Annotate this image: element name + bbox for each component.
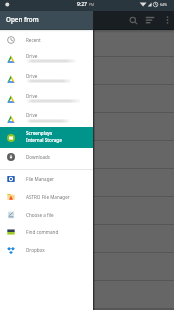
staticText: Find command: [26, 229, 59, 235]
button[interactable]: [0, 69, 93, 89]
button[interactable]: [0, 149, 93, 165]
staticText: Drive: [26, 73, 38, 79]
button[interactable]: [0, 109, 93, 129]
staticText: File Manager: [26, 176, 55, 182]
staticText: 64%: [160, 2, 168, 7]
button[interactable]: Sort: [142, 11, 161, 30]
button[interactable]: [0, 89, 93, 109]
staticText: Internal Storage: [26, 137, 62, 143]
staticText: 9:27: [77, 1, 87, 8]
button[interactable]: [0, 49, 93, 69]
staticText: Choose a file: [26, 212, 54, 218]
button[interactable]: More options: [158, 11, 174, 30]
staticText: Dropbox: [26, 247, 45, 253]
button[interactable]: [0, 32, 93, 48]
staticText: Downloads: [26, 154, 51, 160]
button[interactable]: Search: [123, 11, 142, 30]
staticText: Screenplays: [26, 130, 53, 136]
staticText: Open from: [6, 15, 39, 24]
button[interactable]: [0, 171, 93, 187]
button[interactable]: [0, 242, 93, 258]
button[interactable]: [0, 127, 93, 148]
staticText: Recent: [26, 37, 41, 43]
staticText: Drive: [26, 53, 38, 59]
staticText: Drive: [26, 93, 38, 99]
staticText: ASTRO File Manager: [26, 194, 70, 200]
button[interactable]: [0, 224, 93, 240]
button[interactable]: [0, 207, 93, 223]
staticText: Drive: [26, 112, 38, 118]
staticText: PM: [89, 2, 95, 7]
button[interactable]: [0, 189, 93, 205]
